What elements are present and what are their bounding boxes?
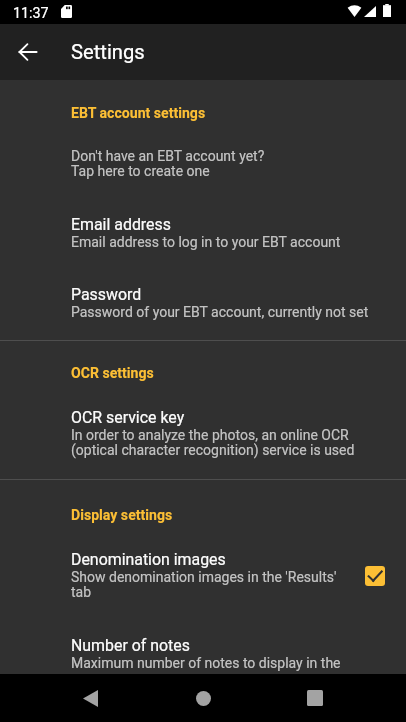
button[interactable]: Home xyxy=(175,674,231,722)
button[interactable]: Recent apps xyxy=(287,674,343,722)
staticText: Password xyxy=(71,285,142,304)
button[interactable]: Email address xyxy=(0,200,406,270)
button[interactable]: Don't have an EBT account yet? Tap here … xyxy=(0,133,406,200)
staticText: Maximum number of notes to display in th… xyxy=(71,655,341,671)
staticText: Email address xyxy=(71,215,171,234)
staticText: 11:37 xyxy=(13,5,49,22)
staticText: Don't have an EBT account yet? Tap here … xyxy=(71,148,265,180)
staticText: Show denomination images in the 'Results… xyxy=(71,569,337,601)
staticText: EBT account settings xyxy=(71,105,206,122)
staticText: OCR service key xyxy=(71,408,185,427)
staticText: In order to analyze the photos, an onlin… xyxy=(71,427,355,459)
button[interactable]: Back xyxy=(62,674,118,722)
button[interactable]: Denomination images xyxy=(0,535,406,621)
staticText: Settings xyxy=(71,40,145,64)
button[interactable]: Number of notes xyxy=(0,621,406,691)
button[interactable]: OCR service key xyxy=(0,393,406,479)
button[interactable]: Password xyxy=(0,270,406,340)
staticText: Display settings xyxy=(71,507,173,524)
button[interactable]: Navigate up xyxy=(5,28,50,76)
staticText: OCR settings xyxy=(71,365,154,382)
staticText: Password of your EBT account, currently … xyxy=(71,304,369,320)
staticText: Email address to log in to your EBT acco… xyxy=(71,234,341,250)
staticText: Number of notes xyxy=(71,636,190,655)
staticText: Denomination images xyxy=(71,550,226,569)
